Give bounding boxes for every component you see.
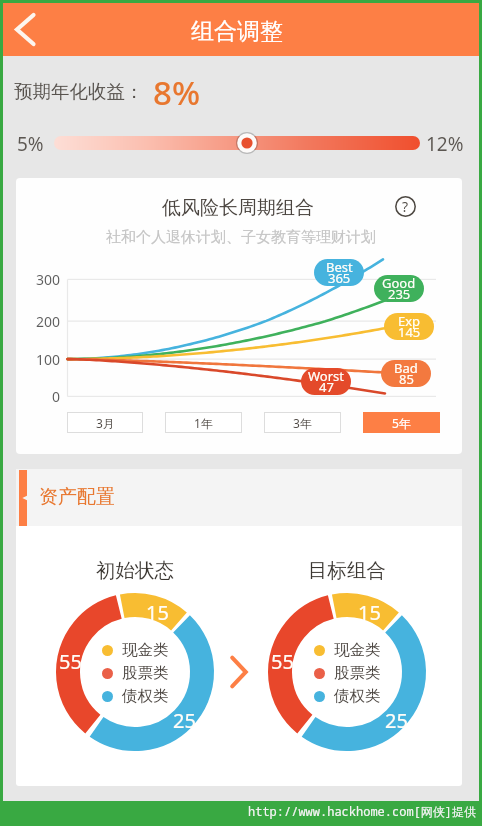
staticText: Worst (308, 368, 344, 385)
staticText: 低风险长周期组合 (162, 196, 314, 220)
staticText: 85 (399, 370, 414, 387)
staticText: 25 (385, 707, 408, 733)
staticText: 25 (173, 707, 196, 733)
staticText: 100 (36, 350, 61, 369)
staticText: 8% (153, 70, 200, 115)
staticText: 145 (398, 323, 421, 340)
staticText: Exp (398, 313, 421, 330)
staticText: http://www.hackhome.com[网侠]提供 (248, 803, 477, 819)
staticText: 股票类 (122, 663, 169, 683)
staticText: Good (382, 275, 416, 292)
staticText: 47 (319, 378, 334, 395)
staticText: 预期年化收益： (14, 80, 144, 103)
staticText: 0 (52, 387, 61, 406)
staticText: ? (402, 197, 409, 216)
staticText: 初始状态 (96, 558, 174, 583)
staticText: 资产配置 (39, 485, 115, 509)
staticText: 股票类 (334, 663, 381, 683)
staticText: 目标组合 (308, 558, 386, 583)
other: Transition (229, 655, 249, 689)
staticText: 现金类 (122, 640, 169, 660)
button[interactable]: Help (392, 193, 418, 219)
button[interactable]: 3月 (67, 412, 143, 433)
button[interactable]: 1年 (165, 412, 242, 433)
staticText: 300 (36, 270, 61, 289)
button[interactable]: 资产配置 (16, 469, 462, 527)
staticText: 365 (328, 269, 351, 286)
staticText: 15 (146, 599, 169, 625)
staticText: 社和个人退休计划、子女教育等理财计划 (106, 228, 376, 247)
button[interactable]: Risk slider (236, 132, 258, 154)
staticText: 组合调整 (191, 17, 283, 46)
staticText: 3月 (96, 415, 115, 431)
staticText: 债权类 (122, 686, 169, 706)
staticText: Bad (394, 360, 418, 377)
staticText: 3年 (293, 415, 312, 431)
staticText: 200 (36, 312, 61, 331)
staticText: 现金类 (334, 640, 381, 660)
staticText: 55 (271, 648, 294, 674)
staticText: 5年 (392, 415, 411, 431)
staticText: 5% (17, 131, 44, 157)
button[interactable]: 3年 (264, 412, 341, 433)
button[interactable]: 5年 (363, 412, 440, 433)
button[interactable]: Back (6, 6, 51, 53)
staticText: 债权类 (334, 686, 381, 706)
staticText: 12% (426, 131, 464, 157)
staticText: 235 (388, 285, 411, 302)
staticText: 55 (59, 648, 82, 674)
staticText: 1年 (194, 415, 213, 431)
staticText: Best (326, 259, 353, 276)
staticText: 15 (358, 599, 381, 625)
